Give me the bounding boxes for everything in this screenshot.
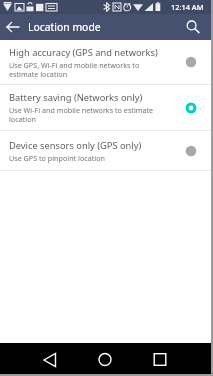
staticText: Use GPS to pinpoint location bbox=[9, 153, 105, 163]
staticText: Battery saving (Networks only) bbox=[9, 91, 143, 104]
button[interactable]: High accuracy (GPS and networks) bbox=[0, 40, 213, 84]
button[interactable]: Recent apps bbox=[144, 343, 176, 375]
staticText: Location mode bbox=[28, 20, 101, 34]
button[interactable]: Search bbox=[180, 14, 206, 40]
button[interactable]: Home bbox=[89, 343, 121, 375]
button[interactable]: Back bbox=[0, 14, 26, 40]
button[interactable]: Battery saving (Networks only) bbox=[0, 85, 213, 130]
staticText: Device sensors only (GPS only) bbox=[9, 139, 142, 152]
button[interactable]: Device sensors only (GPS only) bbox=[0, 131, 213, 170]
staticText: 12:14 AM bbox=[171, 2, 204, 12]
staticText: Use GPS, Wi-Fi and mobile networks to es… bbox=[9, 60, 140, 79]
staticText: Use Wi-Fi and mobile networks to estimat… bbox=[9, 105, 154, 124]
button[interactable]: Back bbox=[34, 344, 66, 376]
staticText: High accuracy (GPS and networks) bbox=[9, 46, 158, 59]
